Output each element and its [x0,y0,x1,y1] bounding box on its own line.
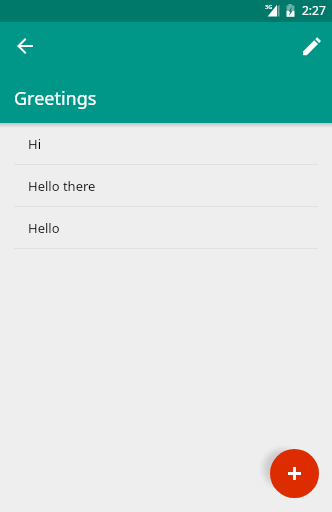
staticText: Hello [28,219,60,237]
staticText: 3G [265,3,273,11]
button[interactable]: Add [270,449,319,498]
button[interactable]: Hello [0,207,332,249]
staticText: Greetings [14,86,97,111]
staticText: Hello there [28,177,96,195]
staticText: 2:27 [302,2,326,18]
staticText: Hi [28,135,41,153]
button[interactable]: Edit [293,27,332,69]
button[interactable]: Hello there [0,165,332,207]
button[interactable]: Back [2,23,48,69]
button[interactable]: Hi [0,123,332,165]
